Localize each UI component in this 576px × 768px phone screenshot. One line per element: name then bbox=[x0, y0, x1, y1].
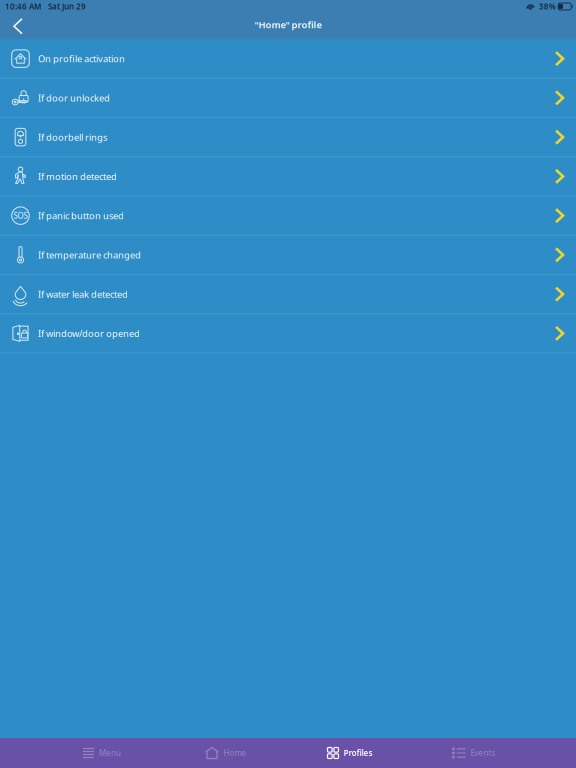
button[interactable]: Events bbox=[412, 738, 536, 768]
staticText: If doorbell rings bbox=[38, 131, 107, 143]
staticText: If water leak detected bbox=[38, 288, 128, 300]
staticText: If window/door opened bbox=[38, 327, 140, 340]
staticText: Menu bbox=[99, 748, 121, 758]
button[interactable]: Back bbox=[0, 14, 32, 39]
button[interactable]: Profiles bbox=[288, 738, 412, 768]
staticText: Home bbox=[223, 748, 246, 758]
button[interactable]: If doorbell rings bbox=[0, 118, 576, 157]
staticText: SOS bbox=[13, 210, 27, 221]
button[interactable]: If window/door opened bbox=[0, 314, 576, 353]
button[interactable]: If motion detected bbox=[0, 157, 576, 196]
staticText: 38% bbox=[539, 1, 556, 12]
button[interactable]: If door unlocked bbox=[0, 79, 576, 118]
staticText: Events bbox=[470, 748, 495, 758]
staticText: If door unlocked bbox=[38, 92, 110, 104]
button[interactable]: If water leak detected bbox=[0, 275, 576, 314]
staticText: 10:46 AM bbox=[5, 1, 41, 12]
button[interactable]: Home bbox=[164, 738, 288, 768]
button[interactable]: Menu bbox=[40, 738, 164, 768]
button[interactable]: SOS bbox=[0, 196, 576, 236]
staticText: If panic button used bbox=[38, 209, 124, 222]
button[interactable]: If temperature changed bbox=[0, 236, 576, 275]
staticText: "Home" profile bbox=[254, 19, 321, 31]
staticText: On profile activation bbox=[38, 52, 125, 65]
staticText: Sat Jun 29 bbox=[48, 1, 86, 12]
staticText: Profiles bbox=[343, 748, 372, 758]
button[interactable]: On profile activation bbox=[0, 39, 576, 79]
staticText: If temperature changed bbox=[38, 249, 141, 261]
staticText: If motion detected bbox=[38, 170, 117, 183]
